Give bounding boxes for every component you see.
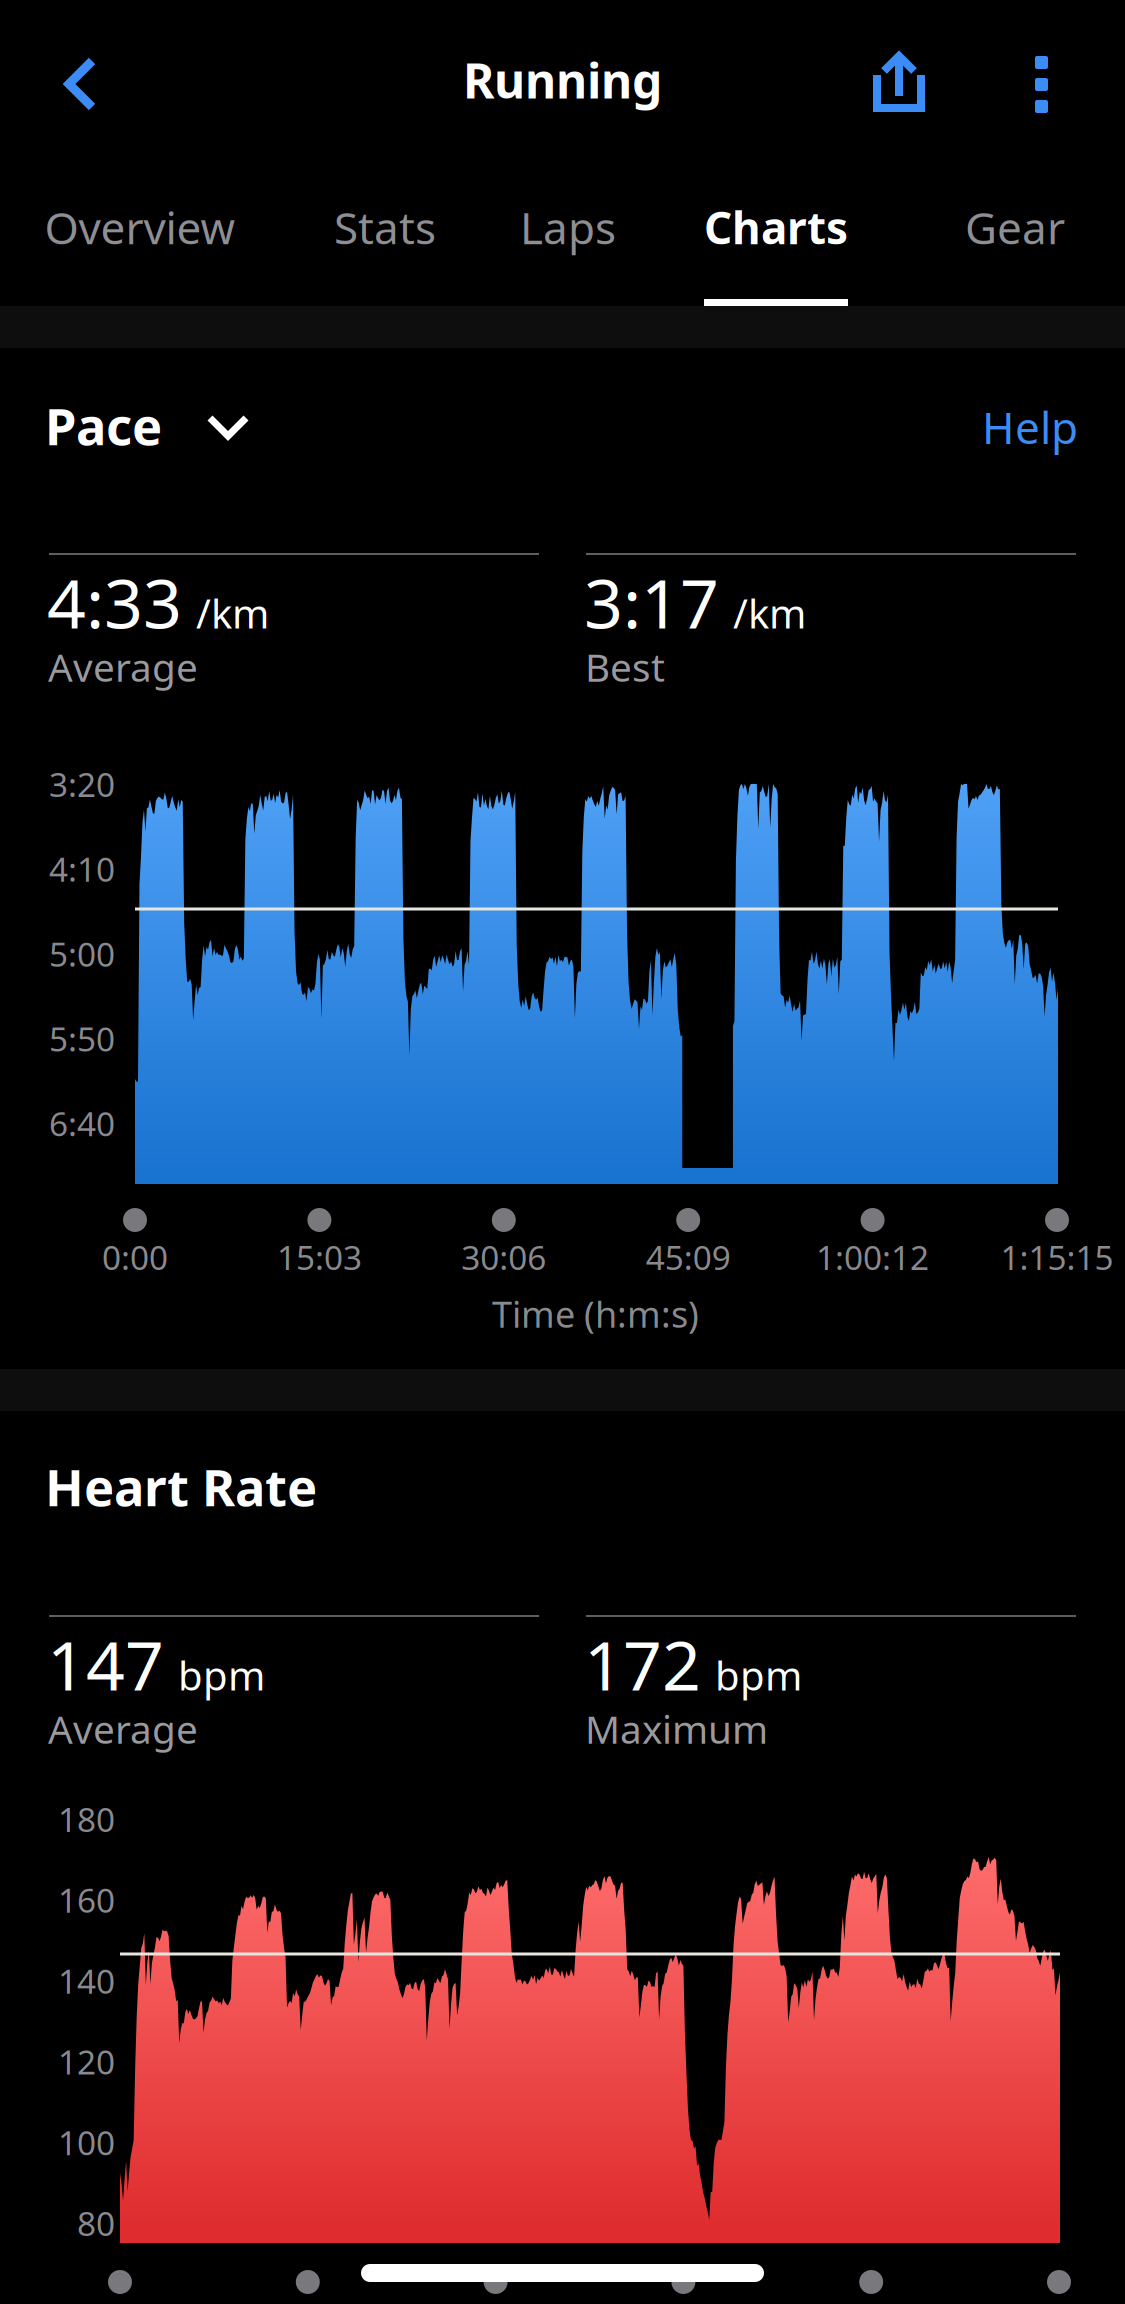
staticText: 3:20 <box>49 762 115 806</box>
staticText: 15:03 <box>277 1235 362 1279</box>
staticText: Help <box>982 398 1078 456</box>
button[interactable]: Overview <box>25 170 255 306</box>
staticText: /km <box>196 586 269 640</box>
button[interactable]: Share <box>828 0 968 160</box>
staticText: 120 <box>58 2039 115 2084</box>
staticText: Stats <box>334 198 436 256</box>
staticText: Heart Rate <box>45 1453 317 1520</box>
staticText: 5:50 <box>49 1016 115 1061</box>
staticText: 6:40 <box>49 1101 115 1145</box>
staticText: bpm <box>178 1648 265 1702</box>
staticText: 4:10 <box>49 847 115 891</box>
staticText: 180 <box>58 1797 115 1841</box>
staticText: Average <box>48 641 198 692</box>
staticText: 30:06 <box>461 1235 546 1279</box>
staticText: 3:17 <box>584 557 719 647</box>
staticText: 100 <box>58 2120 115 2164</box>
staticText: Pace <box>45 392 162 459</box>
staticText: Average <box>48 1703 198 1754</box>
staticText: Charts <box>704 198 848 256</box>
button[interactable]: Stats <box>270 170 500 306</box>
staticText: 0:00 <box>102 1235 168 1279</box>
staticText: 1:15:15 <box>1000 1235 1113 1279</box>
staticText: Best <box>585 641 665 692</box>
staticText: 4:33 <box>47 557 182 647</box>
staticText: Running <box>463 48 662 112</box>
button[interactable]: Charts <box>661 170 891 306</box>
button[interactable]: Gear <box>900 170 1125 306</box>
staticText: 140 <box>58 1959 115 2003</box>
staticText: 172 <box>584 1619 701 1709</box>
staticText: Maximum <box>585 1703 768 1754</box>
staticText: bpm <box>715 1648 802 1702</box>
staticText: Time (h:m:s) <box>492 1290 699 1338</box>
staticText: Overview <box>44 198 235 256</box>
button[interactable]: Laps <box>453 170 683 306</box>
staticText: 160 <box>58 1878 115 1922</box>
staticText: Gear <box>965 198 1065 256</box>
button[interactable]: More options <box>978 0 1108 160</box>
staticText: Laps <box>520 198 616 256</box>
button[interactable]: Pace <box>45 396 305 486</box>
staticText: 80 <box>77 2201 115 2245</box>
staticText: 45:09 <box>646 1235 731 1279</box>
button[interactable]: Help <box>908 382 1078 472</box>
staticText: 1:00:12 <box>816 1235 929 1279</box>
staticText: /km <box>733 586 806 640</box>
staticText: 147 <box>47 1619 164 1709</box>
button[interactable]: Back <box>0 0 150 160</box>
staticText: 5:00 <box>49 932 115 976</box>
